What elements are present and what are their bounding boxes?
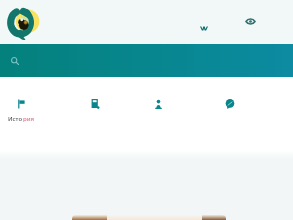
button[interactable] [204,96,256,112]
staticText: рия [23,115,35,123]
staticText: Исто [8,115,23,123]
button[interactable]: Profile [9,7,42,40]
button[interactable] [69,96,121,112]
button[interactable]: Show balance [239,10,261,32]
button[interactable] [0,44,293,77]
button[interactable] [132,96,184,112]
button[interactable]: Исто [0,96,47,123]
button[interactable]: VK [193,17,215,39]
